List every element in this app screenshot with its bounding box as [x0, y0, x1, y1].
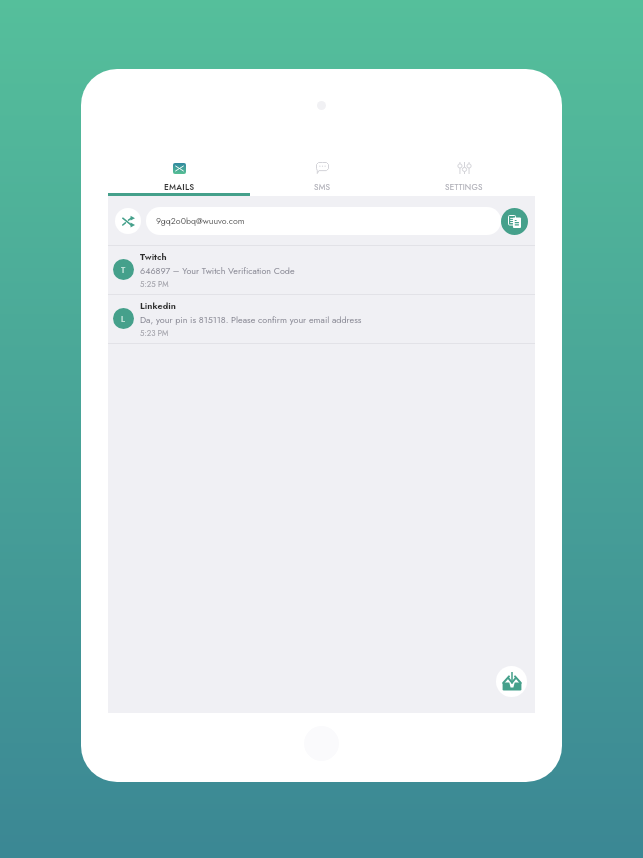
staticText: Da, your pin is 815118. Please confirm y… — [140, 313, 362, 326]
button[interactable]: T — [108, 245, 535, 294]
button[interactable]: SMS — [251, 145, 393, 196]
staticText: SETTINGS — [445, 181, 483, 193]
button[interactable]: Shuffle — [115, 208, 141, 234]
staticText: SMS — [314, 181, 331, 193]
staticText: Linkedin — [140, 299, 176, 312]
button[interactable]: 9gq2o0bq@wuuvo.com — [146, 207, 501, 235]
button[interactable]: L — [108, 294, 535, 343]
staticText: T — [121, 263, 126, 276]
staticText: EMAILS — [164, 181, 195, 193]
button[interactable]: Inbox — [496, 666, 527, 697]
staticText: 646897 – Your Twitch Verification Code — [140, 264, 295, 277]
staticText: 5:23 PM — [140, 328, 169, 339]
button[interactable]: SETTINGS — [393, 145, 535, 196]
staticText: L — [121, 312, 126, 325]
button[interactable]: Copy — [501, 208, 528, 235]
staticText: 5:25 PM — [140, 279, 169, 290]
staticText: Twitch — [140, 250, 167, 263]
staticText: 9gq2o0bq@wuuvo.com — [156, 215, 245, 228]
button[interactable]: EMAILS — [108, 145, 251, 196]
